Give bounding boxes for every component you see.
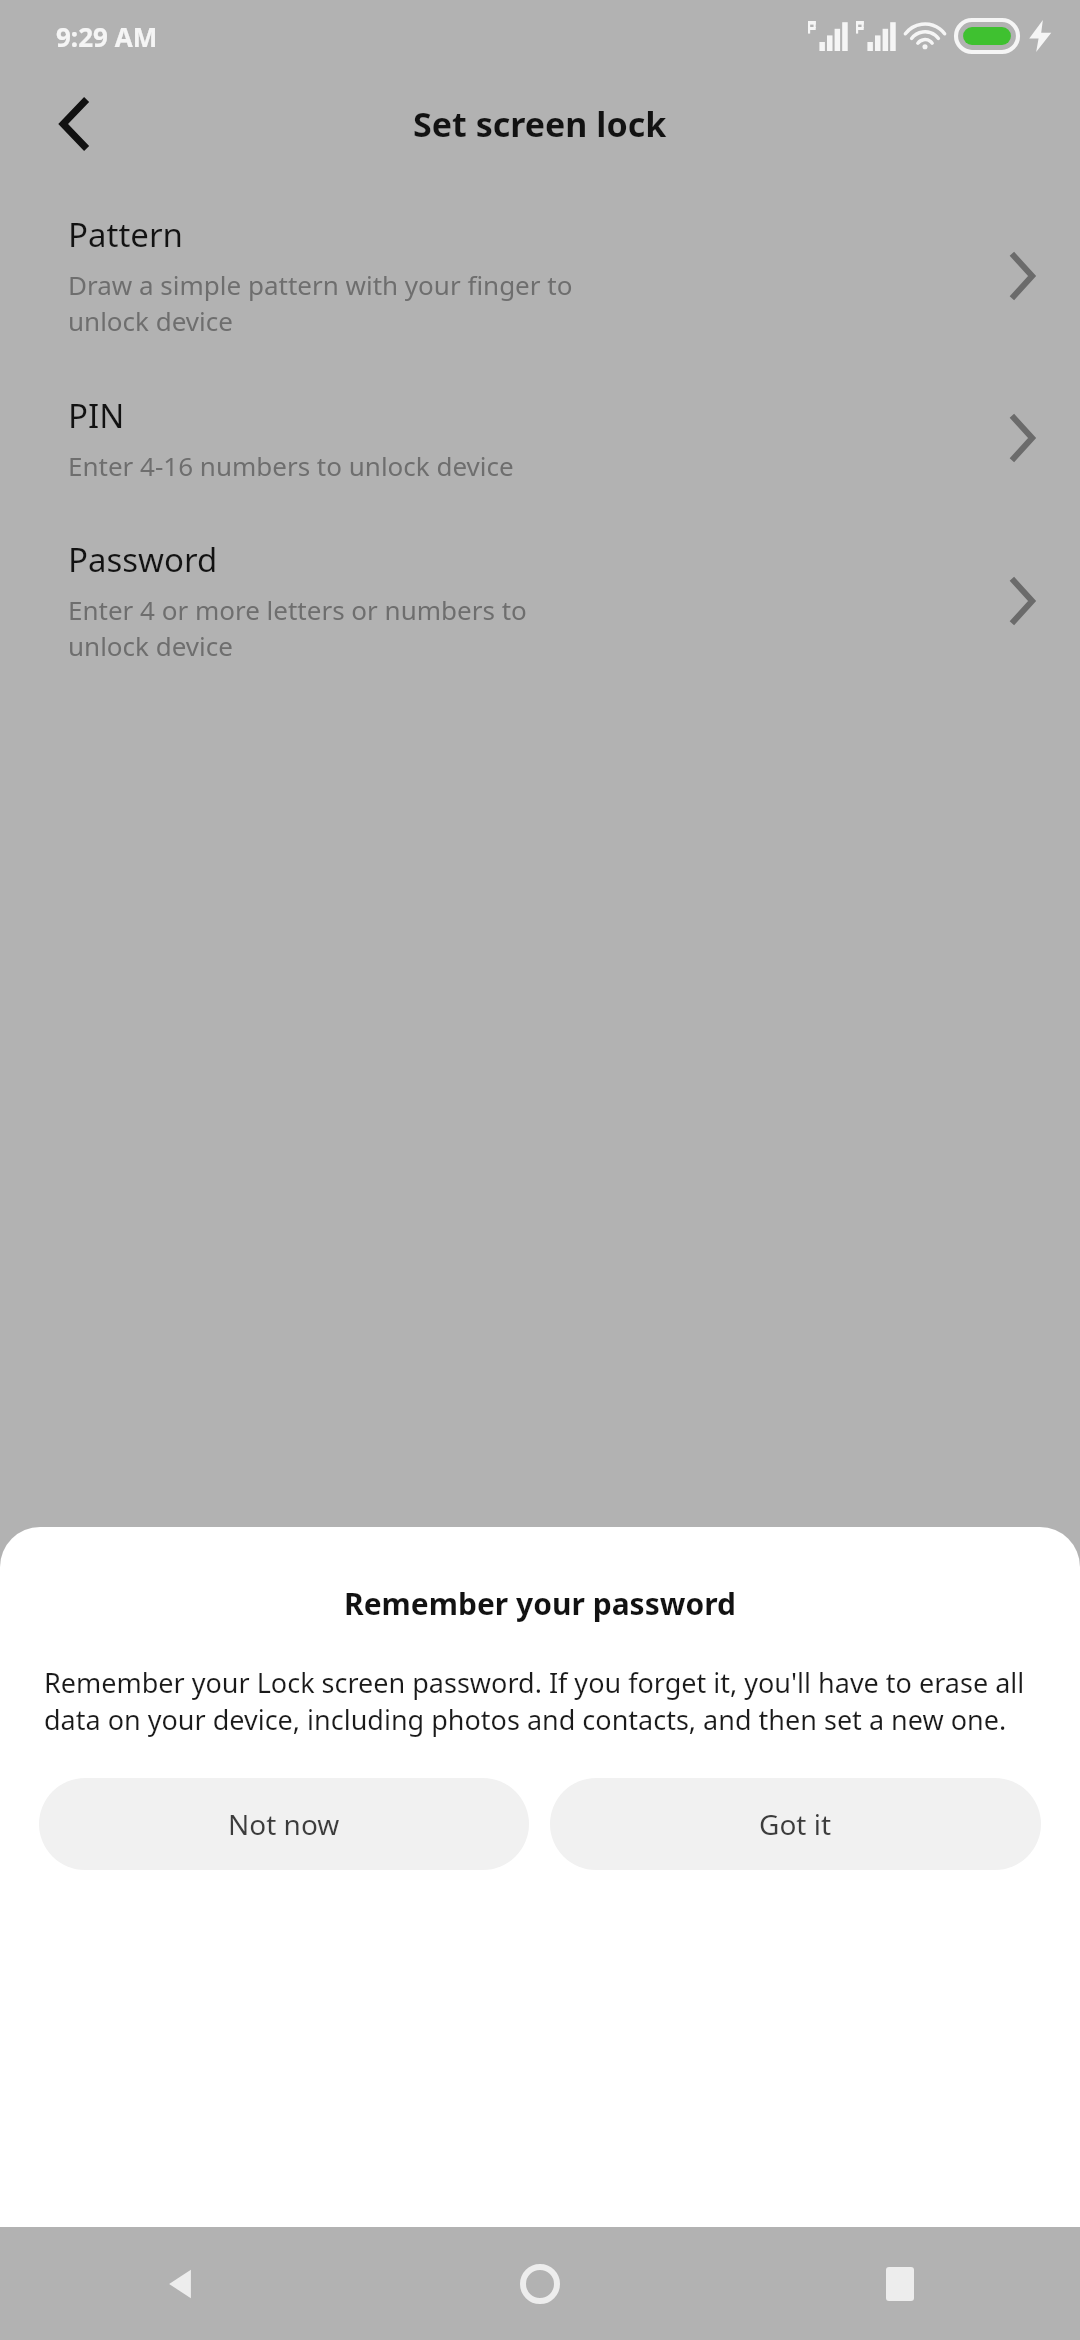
staticText: 9:29 AM [56, 19, 158, 54]
staticText: Enter 4 or more letters or numbers to un… [68, 592, 598, 664]
staticText: TechBone [172, 2214, 404, 2285]
staticText: Remember your Lock screen password. If y… [44, 1664, 1036, 1738]
staticText: Got it [759, 1805, 832, 1843]
button[interactable]: Home [360, 2227, 720, 2340]
staticText: Pattern [68, 212, 183, 257]
staticText: Password [68, 537, 218, 582]
staticText: PIN [68, 393, 125, 438]
button[interactable]: Pattern [0, 202, 1080, 349]
button[interactable]: Not now [39, 1778, 529, 1870]
staticText: Remember your password [344, 1583, 736, 1624]
button[interactable]: Got it [550, 1778, 1041, 1870]
button[interactable]: Recents [720, 2227, 1080, 2340]
button[interactable]: Back [0, 2227, 360, 2340]
button[interactable]: Password [0, 527, 1080, 674]
button[interactable]: PIN [0, 383, 1080, 493]
button[interactable]: Back [26, 76, 122, 172]
staticText: Not now [228, 1805, 340, 1843]
staticText: Enter 4-16 numbers to unlock device [68, 448, 514, 483]
staticText: Set screen lock [413, 101, 667, 147]
staticText: Draw a simple pattern with your finger t… [68, 267, 628, 339]
